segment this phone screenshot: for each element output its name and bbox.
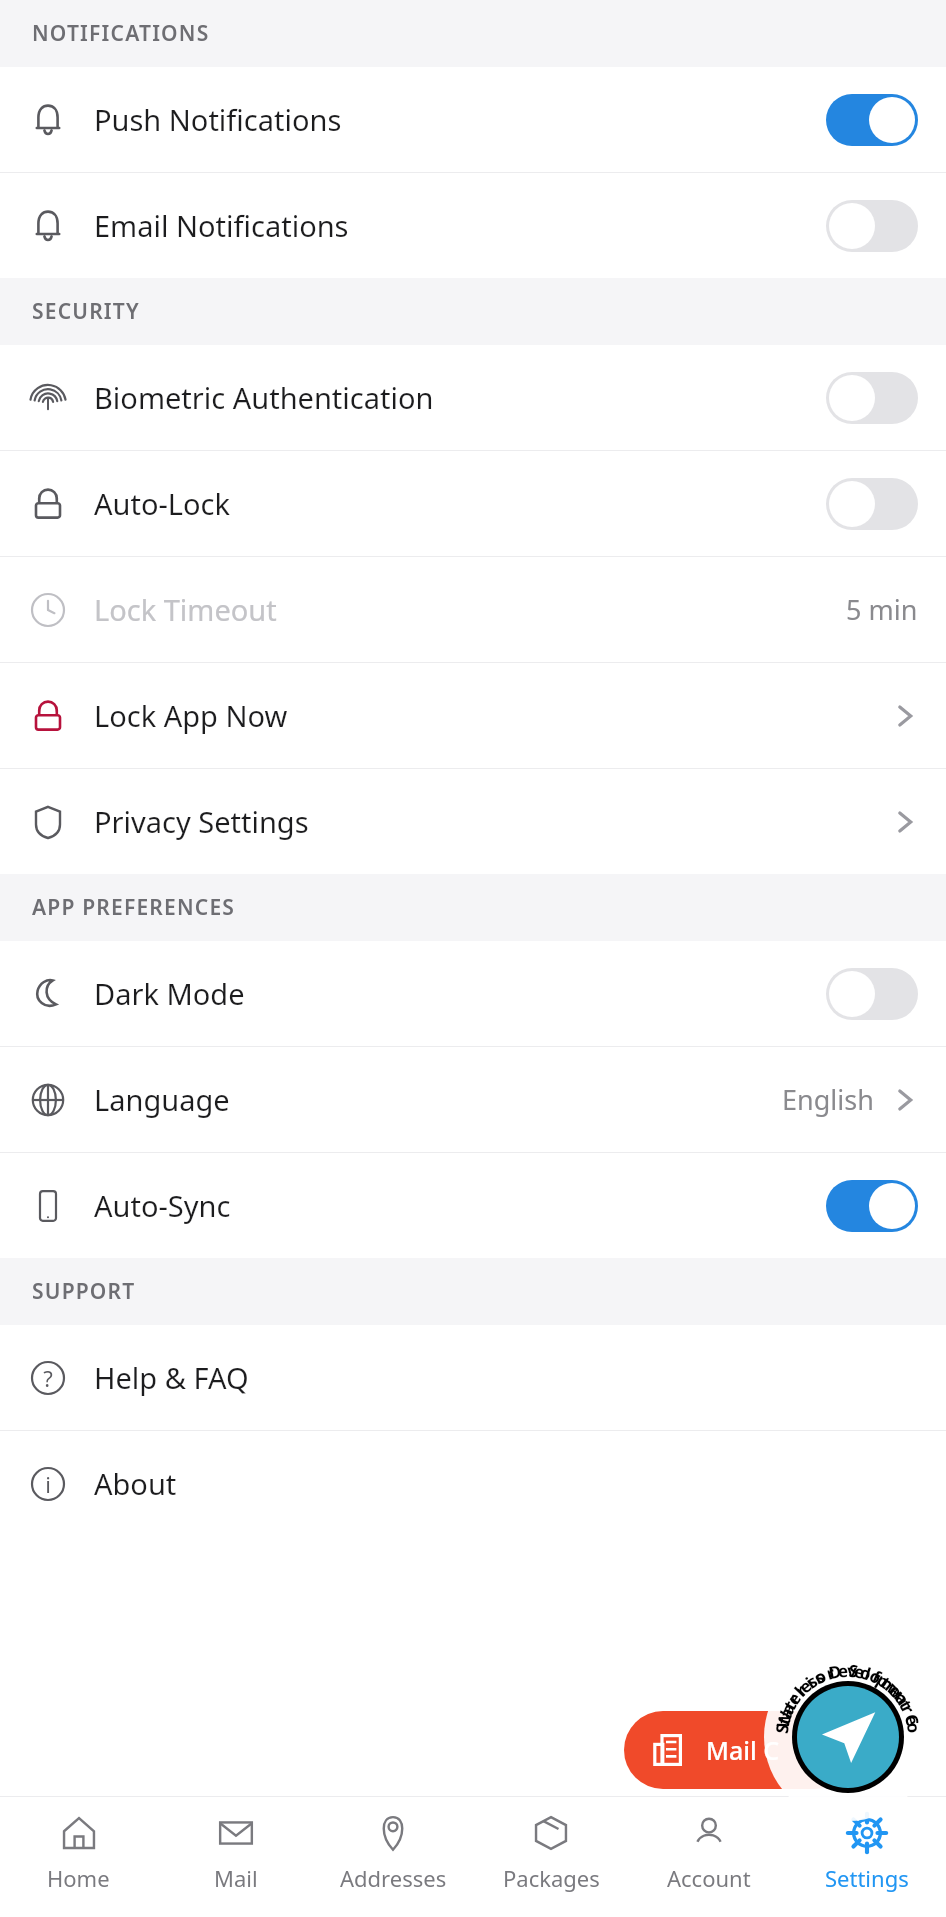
staticText: o (866, 1664, 886, 1689)
staticText: Settings (825, 1863, 909, 1893)
staticText: r (782, 1689, 805, 1709)
staticText: e (900, 1712, 925, 1729)
button[interactable]: Email Notifications (0, 173, 946, 278)
staticText: S (848, 1659, 860, 1683)
staticText: o (902, 1721, 926, 1735)
staticText: Auto-Lock (94, 484, 230, 523)
staticText: t (894, 1696, 918, 1714)
staticText: Mail (214, 1863, 258, 1893)
staticText: r (824, 1661, 838, 1685)
staticText: p (872, 1668, 894, 1693)
staticText: Home (47, 1863, 110, 1893)
button[interactable]: Biometric Authentication (0, 345, 946, 450)
staticText: ? (43, 1363, 53, 1393)
button[interactable]: Lock Timeout (0, 557, 946, 662)
staticText: About (94, 1464, 177, 1503)
staticText: l (862, 1662, 875, 1686)
staticText: Auto-Sync (94, 1186, 231, 1225)
staticText: English (782, 1081, 874, 1118)
button[interactable]: ? (0, 1325, 946, 1430)
staticText: n (889, 1686, 914, 1709)
staticText: f (868, 1665, 885, 1689)
staticText: e (781, 1687, 807, 1709)
button[interactable]: Language (0, 1047, 946, 1152)
staticText: t (778, 1696, 802, 1714)
staticText: Addresses (340, 1863, 447, 1893)
staticText: Mail C (706, 1733, 780, 1767)
button[interactable]: Auto-Lock (0, 451, 946, 556)
staticText: a (773, 1703, 799, 1722)
staticText: m (876, 1671, 904, 1700)
button[interactable]: Account (630, 1797, 788, 1917)
staticText: C (900, 1711, 925, 1728)
button[interactable]: Addresses (314, 1797, 472, 1917)
staticText: r (896, 1700, 920, 1717)
staticText: Account (667, 1863, 751, 1893)
staticText: l (789, 1681, 810, 1701)
staticText: S (770, 1722, 794, 1735)
staticText: Lock App Now (94, 696, 288, 735)
staticText: i (801, 1671, 819, 1694)
button[interactable]: Settings (788, 1797, 946, 1917)
staticText: e (852, 1659, 867, 1684)
staticText: Dark Mode (94, 974, 245, 1013)
button[interactable]: Packages (472, 1797, 630, 1917)
staticText: SECURITY (32, 297, 140, 326)
staticText: v (846, 1659, 858, 1682)
staticText: D (827, 1659, 844, 1684)
staticText: e (837, 1659, 849, 1682)
staticText: o (810, 1664, 830, 1689)
staticText: Help & FAQ (94, 1358, 249, 1397)
staticText: W (771, 1708, 797, 1730)
staticText: Push Notifications (94, 100, 342, 139)
staticText: SUPPORT (32, 1277, 136, 1306)
staticText: Language (94, 1080, 230, 1119)
staticText: Packages (503, 1863, 600, 1893)
button[interactable]: Mail (157, 1797, 314, 1917)
button[interactable]: Auto-Sync (0, 1153, 946, 1258)
button[interactable]: Home (0, 1797, 157, 1917)
button[interactable]: Mail C (624, 1711, 854, 1789)
staticText: t (771, 1713, 796, 1727)
staticText: 5 min (846, 591, 918, 628)
staticText: t (876, 1671, 896, 1694)
staticText: s (802, 1669, 822, 1693)
staticText: r (790, 1679, 812, 1701)
button[interactable]: Dark Mode (0, 941, 946, 1046)
staticText: Lock Timeout (94, 590, 277, 629)
staticText: Privacy Settings (94, 802, 309, 841)
staticText: Biometric Authentication (94, 378, 434, 417)
staticText: e (884, 1679, 908, 1703)
staticText: NOTIFICATIONS (32, 19, 210, 48)
button[interactable]: i (0, 1431, 946, 1536)
staticText: o (857, 1660, 874, 1685)
staticText: Email Notifications (94, 206, 349, 245)
staticText: w (882, 1677, 909, 1704)
staticText: e (794, 1674, 817, 1698)
button[interactable]: Privacy Settings (0, 769, 946, 874)
staticText: APP PREFERENCES (32, 893, 236, 922)
staticText: i (45, 1469, 51, 1499)
staticText: a (890, 1688, 915, 1710)
button[interactable]: Push Notifications (0, 67, 946, 172)
button[interactable]: Lock App Now (0, 663, 946, 768)
staticText: a (775, 1699, 801, 1718)
staticText: s (810, 1665, 828, 1689)
